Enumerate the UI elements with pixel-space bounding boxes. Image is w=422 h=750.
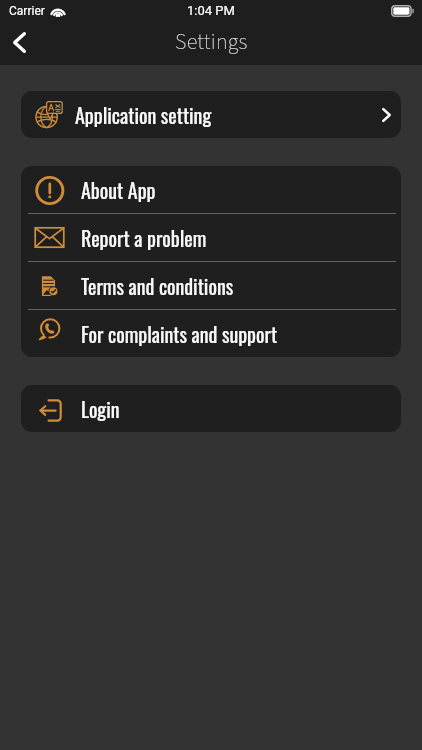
staticText: 1:04 PM [187, 3, 235, 18]
staticText: Terms and conditions [81, 271, 234, 301]
button[interactable]: Terms and conditions [21, 262, 401, 309]
button[interactable]: Login [21, 385, 401, 432]
staticText: Settings [175, 26, 248, 57]
staticText: For complaints and support [81, 319, 278, 349]
button[interactable]: Application setting [21, 91, 401, 138]
button[interactable]: About App [21, 166, 401, 213]
button[interactable]: Report a problem [21, 214, 401, 261]
staticText: Carrier [9, 4, 45, 18]
button[interactable]: Back [0, 23, 38, 61]
staticText: Application setting [75, 100, 212, 130]
staticText: About App [81, 175, 156, 205]
button[interactable]: For complaints and support [21, 310, 401, 357]
staticText: Login [81, 394, 120, 424]
staticText: Report a problem [81, 223, 207, 253]
